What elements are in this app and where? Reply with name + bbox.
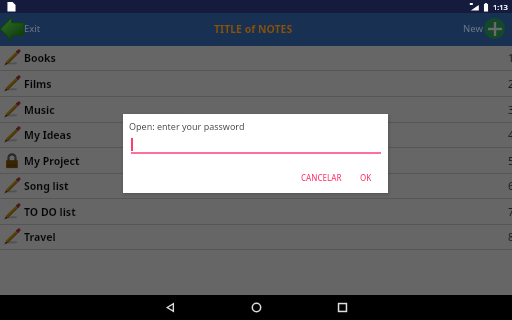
staticText: Books: [24, 51, 56, 65]
button[interactable]: TO DO list: [0, 199, 512, 225]
staticText: Exit: [24, 22, 41, 35]
button[interactable]: OK: [356, 168, 376, 187]
button[interactable]: Recents: [299, 295, 385, 320]
button[interactable]: Back: [127, 295, 213, 320]
button[interactable]: Travel: [0, 225, 512, 250]
staticText: 1:13: [493, 2, 508, 12]
staticText: Open: enter your password: [129, 120, 245, 132]
staticText: 5: [508, 154, 512, 168]
staticText: CANCELAR: [301, 172, 342, 183]
staticText: TITLE of NOTES: [214, 22, 293, 36]
staticText: Films: [24, 77, 52, 91]
staticText: 3: [508, 103, 512, 117]
staticText: 2: [508, 77, 512, 91]
button[interactable]: Films: [0, 71, 512, 97]
button[interactable]: Music: [0, 97, 512, 123]
staticText: My Ideas: [24, 128, 72, 142]
staticText: 1: [508, 51, 512, 65]
staticText: Song list: [24, 179, 69, 193]
button[interactable]: CANCELAR: [297, 168, 346, 187]
staticText: 4: [508, 128, 512, 142]
button[interactable]: Home: [213, 295, 299, 320]
staticText: 8: [508, 230, 512, 244]
staticText: 7: [508, 205, 512, 219]
staticText: Travel: [24, 230, 56, 244]
button[interactable]: Books: [0, 46, 512, 71]
button[interactable]: New: [463, 12, 505, 45]
button[interactable]: Exit: [0, 12, 41, 45]
staticText: Music: [24, 103, 55, 117]
staticText: OK: [360, 172, 372, 183]
staticText: New: [463, 22, 483, 35]
staticText: My Project: [24, 154, 80, 168]
button[interactable]: Song list: [0, 174, 512, 199]
button[interactable]: My Project: [0, 148, 512, 174]
button[interactable]: My Ideas: [0, 123, 512, 148]
staticText: 6: [508, 179, 512, 193]
other: New note: [484, 18, 505, 39]
staticText: TO DO list: [24, 205, 76, 219]
